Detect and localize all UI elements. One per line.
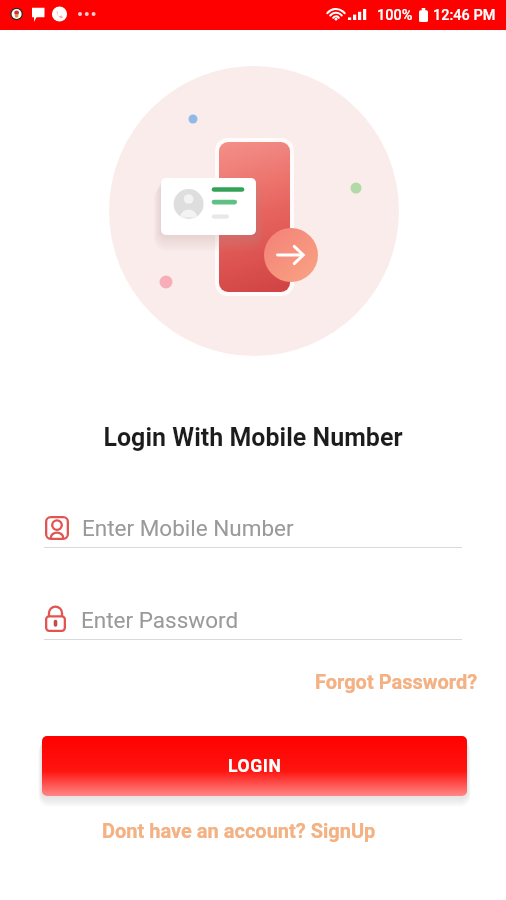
staticText: Enter Mobile Number <box>82 515 294 541</box>
staticText: LOGIN <box>228 756 282 777</box>
button[interactable]: Enter Password <box>44 605 462 641</box>
button[interactable]: Forgot Password? <box>309 664 484 699</box>
button[interactable]: LOGIN <box>42 736 467 796</box>
button[interactable]: Dont have an account? SignUp <box>96 813 382 848</box>
staticText: Login With Mobile Number <box>0 423 506 452</box>
staticText: 100% <box>377 7 413 24</box>
staticText: Forgot Password? <box>315 670 478 693</box>
staticText: 12:46 PM <box>433 7 496 24</box>
staticText: Enter Password <box>81 607 239 633</box>
button[interactable]: Enter Mobile Number <box>44 513 462 549</box>
